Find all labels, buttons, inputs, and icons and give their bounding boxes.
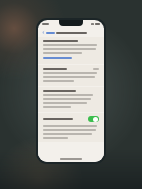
button[interactable]	[43, 57, 72, 59]
button[interactable]	[38, 65, 104, 86]
button[interactable]: Back	[41, 29, 56, 36]
button[interactable]: Toggle on	[38, 113, 104, 125]
other: Toggle on	[88, 116, 99, 122]
